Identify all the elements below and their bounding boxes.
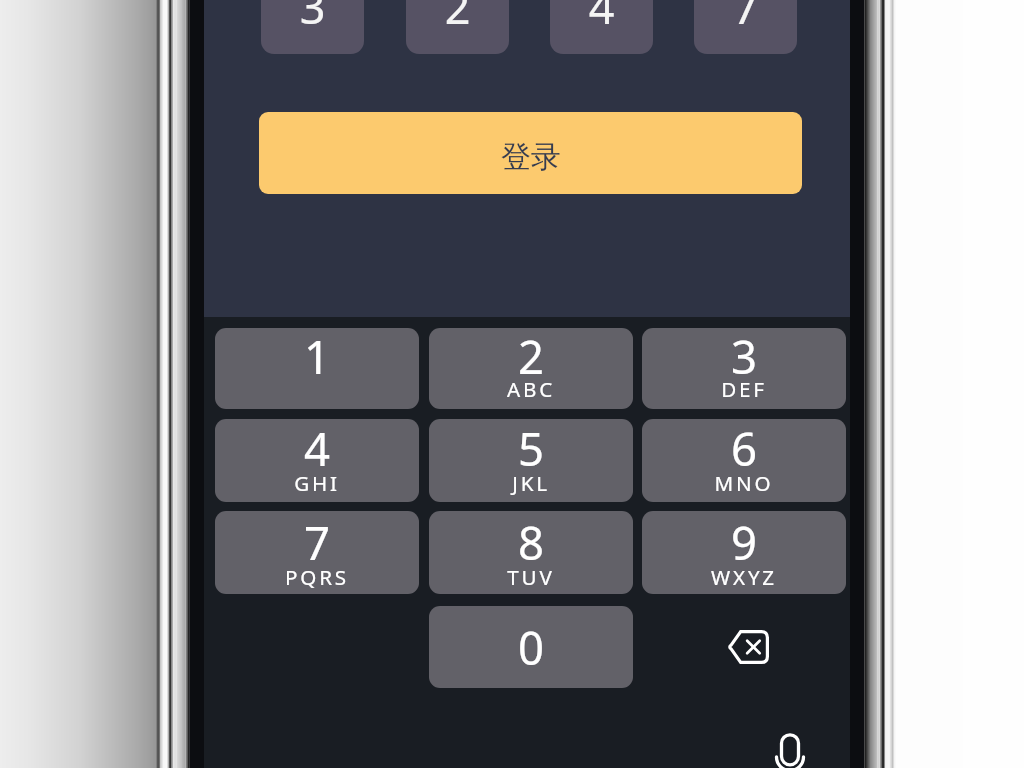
button[interactable]: 9 xyxy=(642,511,846,594)
staticText: 6 xyxy=(642,419,846,479)
button[interactable]: Voice input xyxy=(760,728,820,768)
staticText: 4 xyxy=(550,0,653,37)
staticText: TUV xyxy=(429,563,633,591)
staticText: 2 xyxy=(429,328,633,387)
button[interactable]: 2 xyxy=(429,328,633,409)
staticText: 5 xyxy=(429,419,633,479)
staticText: DEF xyxy=(642,375,846,403)
button[interactable]: 登录 xyxy=(259,112,802,194)
staticText: WXYZ xyxy=(642,563,846,591)
staticText: 2 xyxy=(406,0,509,37)
staticText: 3 xyxy=(642,328,846,387)
staticText: 1 xyxy=(215,328,419,387)
staticText: 0 xyxy=(429,616,633,678)
staticText: 9 xyxy=(642,511,846,573)
button[interactable]: 7 xyxy=(215,511,419,594)
staticText: ABC xyxy=(429,375,633,403)
staticText: 7 xyxy=(694,0,797,37)
button[interactable]: 4 xyxy=(215,419,419,502)
button[interactable]: 4 xyxy=(550,0,653,54)
button[interactable]: 6 xyxy=(642,419,846,502)
staticText: 4 xyxy=(215,419,419,479)
button[interactable]: 3 xyxy=(642,328,846,409)
button[interactable]: 0 xyxy=(429,606,633,688)
button[interactable]: 5 xyxy=(429,419,633,502)
button[interactable]: 2 xyxy=(406,0,509,54)
staticText: 登录 xyxy=(501,138,561,176)
button[interactable]: 7 xyxy=(694,0,797,54)
staticText: 3 xyxy=(261,0,364,37)
button[interactable]: 8 xyxy=(429,511,633,594)
staticText: JKL xyxy=(429,469,633,497)
staticText: 7 xyxy=(215,511,419,573)
staticText: PQRS xyxy=(215,563,419,591)
staticText: 8 xyxy=(429,511,633,573)
button[interactable]: 1 xyxy=(215,328,419,409)
staticText: MNO xyxy=(642,469,846,497)
button[interactable]: Backspace xyxy=(707,606,789,688)
button[interactable]: 3 xyxy=(261,0,364,54)
staticText: GHI xyxy=(215,469,419,497)
